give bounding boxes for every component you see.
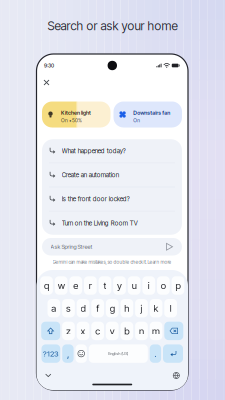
button[interactable]: Downstairs fan [113, 101, 182, 127]
button[interactable]: t [99, 276, 111, 295]
button[interactable]: Backspace [164, 322, 183, 340]
button[interactable]: Hide keyboard [42, 370, 54, 380]
button[interactable]: r [84, 276, 97, 295]
staticText: q [44, 280, 49, 291]
staticText: t [103, 280, 106, 291]
button[interactable]: Change language [170, 370, 182, 380]
staticText: r [89, 280, 92, 291]
staticText: What happened today? [62, 147, 126, 155]
button[interactable]: Kitchen light [42, 101, 110, 127]
staticText: English (US) [108, 351, 128, 356]
button[interactable]: Shift [41, 322, 60, 340]
staticText: e [73, 280, 78, 291]
button[interactable]: u [128, 276, 140, 295]
button[interactable]: d [77, 299, 89, 317]
button[interactable]: x [77, 322, 89, 340]
staticText: x [80, 325, 85, 337]
button[interactable]: Turn on the Living Room TV [42, 211, 182, 235]
staticText: d [80, 302, 85, 314]
button[interactable]: . [150, 344, 161, 363]
button[interactable]: Enter [163, 344, 183, 363]
staticText: Kitchen light [61, 109, 91, 116]
staticText: , [67, 348, 69, 359]
button[interactable]: Ask Spring Street [42, 238, 182, 255]
staticText: z [66, 325, 71, 337]
staticText: On • 50% [61, 117, 82, 123]
staticText: Downstairs fan [133, 109, 170, 116]
staticText: k [153, 302, 158, 314]
button[interactable]: i [142, 276, 155, 295]
button[interactable]: v [106, 322, 119, 340]
button[interactable]: Create an automation [42, 163, 182, 187]
button[interactable]: a [47, 299, 60, 317]
button[interactable]: English (US) [89, 344, 148, 363]
button[interactable]: q [40, 276, 53, 295]
staticText: o [161, 280, 166, 291]
staticText: w [58, 280, 65, 291]
staticText: j [140, 302, 142, 314]
button[interactable]: Emoji [75, 344, 87, 363]
button[interactable]: l [164, 299, 177, 317]
staticText: b [124, 325, 129, 337]
button[interactable]: c [91, 322, 104, 340]
staticText: y [117, 280, 122, 291]
staticText: g [110, 302, 115, 314]
staticText: Turn on the Living Room TV [62, 219, 138, 227]
button[interactable]: ?123 [41, 344, 60, 363]
staticText: l [170, 302, 172, 314]
button[interactable]: Is the front door locked? [42, 187, 182, 211]
staticText: m [152, 325, 160, 337]
staticText: i [148, 280, 150, 291]
button[interactable]: b [120, 322, 133, 340]
button[interactable]: z [62, 322, 75, 340]
button[interactable]: s [62, 299, 75, 317]
staticText: c [95, 325, 100, 337]
button[interactable]: w [55, 276, 67, 295]
button[interactable]: f [91, 299, 104, 317]
staticText: On [133, 117, 140, 123]
staticText: v [110, 325, 115, 337]
button[interactable]: y [113, 276, 126, 295]
staticText: Is the front door locked? [62, 195, 130, 203]
button[interactable]: g [106, 299, 119, 317]
button[interactable]: What happened today? [42, 139, 182, 163]
button[interactable]: p [172, 276, 184, 295]
button[interactable]: m [150, 322, 162, 340]
staticText: f [96, 302, 99, 314]
staticText: Ask Spring Street [50, 243, 92, 250]
button[interactable]: o [157, 276, 170, 295]
button[interactable]: Close [40, 76, 53, 89]
button[interactable]: h [120, 299, 133, 317]
staticText: Gemini can make mistakes, so double chec… [52, 259, 171, 265]
button[interactable]: e [69, 276, 82, 295]
staticText: Search or ask your home [47, 19, 177, 33]
staticText: u [132, 280, 137, 291]
staticText: . [154, 348, 156, 359]
button[interactable]: k [150, 299, 162, 317]
staticText: s [66, 302, 71, 314]
staticText: h [124, 302, 129, 314]
button[interactable]: n [135, 322, 148, 340]
staticText: a [51, 302, 56, 314]
staticText: 9:30 [44, 62, 54, 69]
button[interactable]: , [62, 344, 74, 363]
staticText: n [139, 325, 144, 337]
staticText: p [175, 280, 180, 291]
button[interactable]: j [135, 299, 148, 317]
staticText: ?123 [43, 349, 59, 358]
staticText: Create an automation [62, 171, 119, 179]
